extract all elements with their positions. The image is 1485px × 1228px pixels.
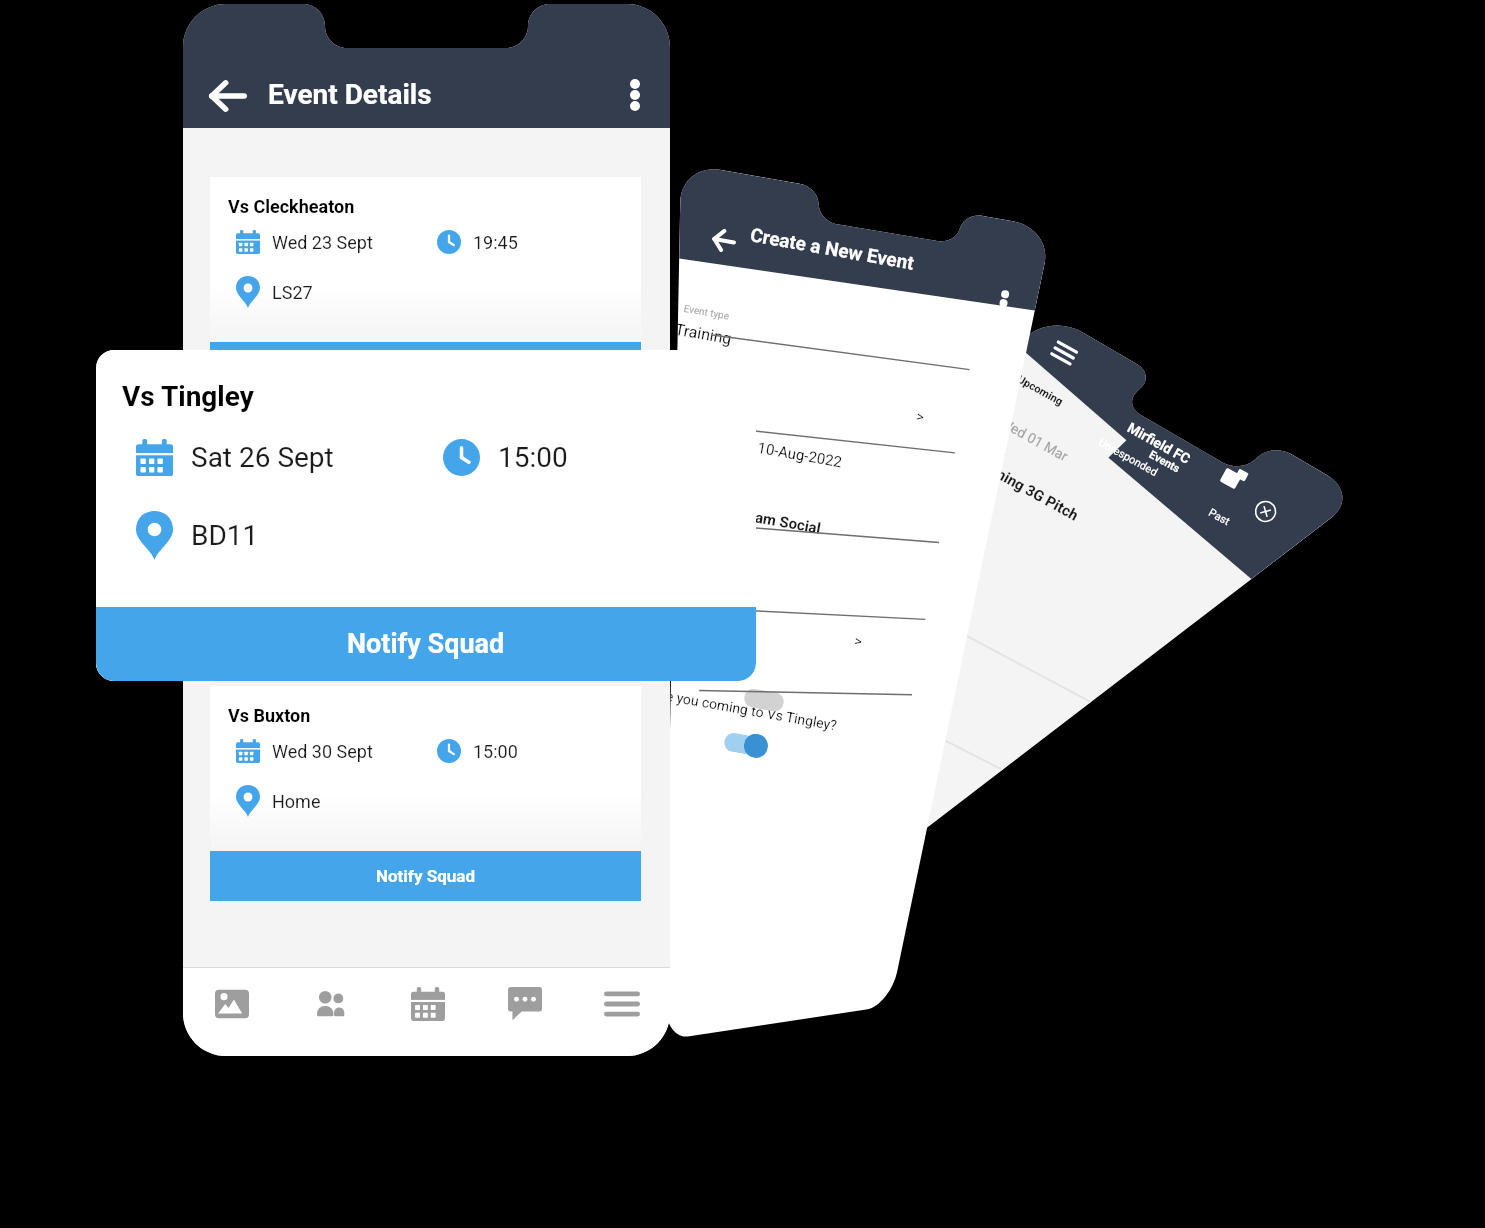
staticText: 15:00 [473, 741, 518, 762]
staticText: Notify Squad [347, 628, 505, 660]
button[interactable]: Notify Squad [210, 342, 641, 392]
button[interactable]: Chat [476, 968, 573, 1056]
button[interactable]: Notify Squad [210, 851, 641, 901]
button[interactable]: Menu [573, 968, 670, 1056]
staticText: Home [272, 791, 321, 812]
staticText: WF7 [910, 443, 943, 471]
button[interactable]: Vs Buxton [210, 686, 641, 901]
staticText: Events [1147, 448, 1183, 476]
staticText: 15:00 [498, 441, 568, 474]
button[interactable]: Events [379, 968, 476, 1056]
staticText: Unresponded [1096, 436, 1160, 479]
staticText: Past [1206, 506, 1233, 529]
staticText: Training [673, 320, 734, 348]
staticText: Vs Buxton [228, 705, 311, 726]
staticText: 19:00 Training 3G Pitch [934, 432, 1082, 525]
staticText: BD11 [191, 519, 259, 552]
button[interactable]: Photos [183, 968, 281, 1056]
staticText: Create a New Event [749, 223, 916, 274]
staticText: Wed 01 Mar [997, 414, 1071, 464]
button[interactable]: Vs Tingley [96, 350, 756, 681]
staticText: Upcoming [1015, 373, 1066, 409]
button[interactable]: More options [613, 70, 657, 120]
staticText: Team Social [737, 505, 822, 538]
staticText: Vs Tingley [122, 380, 254, 413]
button[interactable]: Notify Squad [96, 607, 756, 681]
staticText: Vs Cleckheaton [228, 196, 355, 217]
button[interactable]: Back [203, 72, 253, 120]
staticText: LS27 [272, 282, 313, 303]
staticText: Are you coming to Vs Tingley? [651, 685, 838, 733]
staticText: > [853, 632, 864, 650]
staticText: Event type [683, 303, 730, 323]
staticText: > [915, 408, 926, 425]
staticText: 10-Aug-2022 [756, 439, 844, 471]
button[interactable]: Vs Cleckheaton [210, 177, 641, 392]
staticText: 19:45 [473, 232, 518, 253]
button[interactable]: Squad [281, 968, 379, 1056]
staticText: Mirfield FC [1125, 419, 1194, 467]
staticText: Event Details [268, 78, 432, 111]
staticText: Sat 26 Sept [191, 441, 334, 474]
staticText: Wed 23 Sept [272, 232, 373, 253]
staticText: Notify Squad [376, 866, 475, 886]
staticText: Wed 30 Sept [272, 741, 373, 762]
